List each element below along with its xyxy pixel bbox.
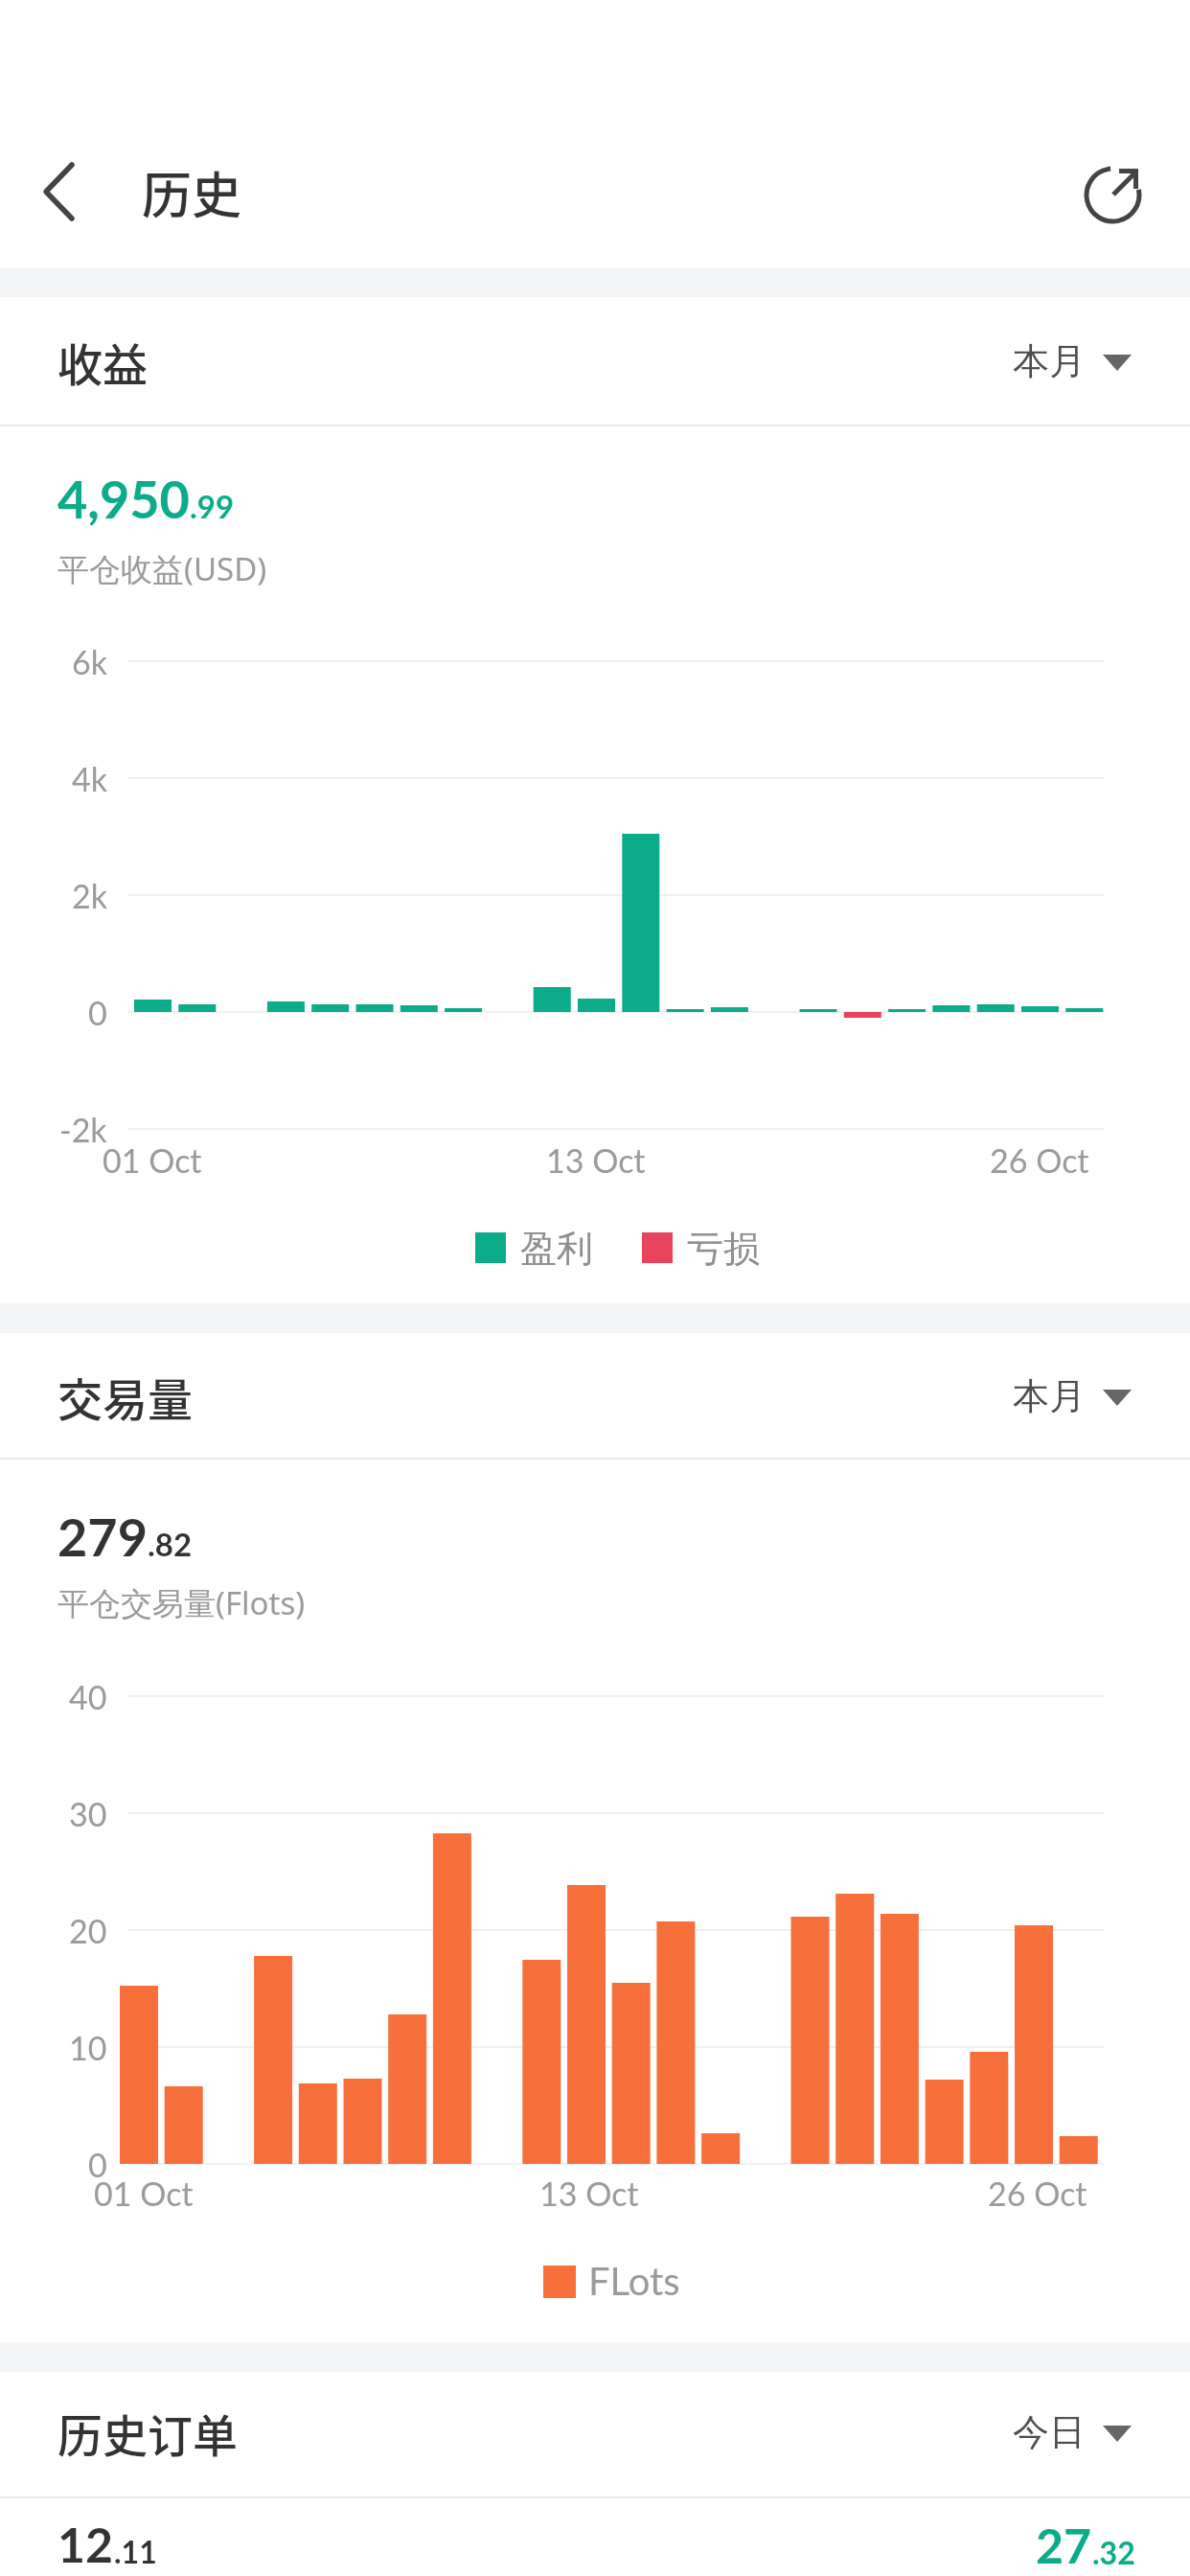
staticText: 盈利	[520, 1226, 593, 1272]
button[interactable]	[977, 316, 1150, 407]
staticText: 本月	[1013, 338, 1086, 384]
staticText: 26 Oct	[988, 2173, 1087, 2213]
button[interactable]	[977, 2387, 1150, 2478]
staticText: 4k	[72, 759, 107, 798]
staticText: 20	[69, 1911, 107, 1950]
staticText: 10	[69, 2028, 107, 2067]
staticText: 01 Oct	[94, 2173, 194, 2213]
staticText: 本月	[1013, 1373, 1086, 1419]
staticText: 13 Oct	[546, 1140, 646, 1180]
staticText: 40	[69, 1677, 107, 1716]
staticText: FLots	[588, 2258, 680, 2304]
staticText: 01 Oct	[103, 1140, 202, 1180]
button[interactable]	[19, 144, 105, 240]
staticText: 26 Oct	[990, 1140, 1089, 1180]
staticText: 平仓交易量(Flots)	[57, 1581, 306, 1624]
staticText: 平仓收益(USD)	[57, 547, 267, 590]
staticText: 27	[1036, 2517, 1092, 2574]
button[interactable]	[977, 1351, 1150, 1442]
staticText: .11	[114, 2533, 157, 2569]
staticText: .82	[148, 1525, 193, 1563]
staticText: 交易量	[57, 1364, 193, 1429]
staticText: 0	[88, 2145, 107, 2184]
staticText: 0	[88, 993, 107, 1032]
staticText: .32	[1092, 2534, 1135, 2570]
staticText: 12	[57, 2516, 114, 2573]
staticText: 4,950	[57, 468, 190, 530]
staticText: 今日	[1013, 2409, 1086, 2455]
staticText: 历史	[142, 156, 242, 228]
staticText: 收益	[57, 329, 148, 394]
staticText: 13 Oct	[539, 2173, 639, 2213]
staticText: 279	[57, 1506, 148, 1568]
staticText: .99	[190, 487, 235, 525]
staticText: -2k	[59, 1110, 107, 1149]
button[interactable]	[1071, 144, 1159, 240]
staticText: 亏损	[687, 1226, 760, 1272]
staticText: 历史订单	[57, 2400, 238, 2465]
staticText: 2k	[72, 876, 107, 915]
staticText: 30	[69, 1794, 107, 1833]
staticText: 6k	[72, 642, 107, 681]
